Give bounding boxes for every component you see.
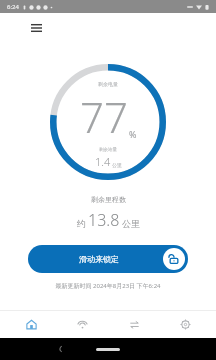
staticText: 约 bbox=[77, 218, 86, 229]
staticText: 13.8 bbox=[88, 209, 120, 231]
staticText: 77 bbox=[80, 88, 128, 145]
button[interactable]: Menu bbox=[26, 17, 46, 37]
button[interactable]: Transfer bbox=[114, 311, 154, 337]
button[interactable]: Wi-Fi bbox=[62, 311, 102, 337]
staticText: 剩余电量 bbox=[98, 81, 118, 87]
staticText: 公里 bbox=[122, 218, 140, 229]
staticText: 6:24 bbox=[7, 3, 19, 11]
button[interactable]: Home bbox=[11, 311, 51, 337]
staticText: 最新更新时间 2024年8月23日 下午6:24 bbox=[55, 282, 161, 290]
staticText: 1.4 bbox=[95, 154, 111, 169]
button[interactable]: Back bbox=[58, 344, 68, 354]
staticText: 剩余里程数 bbox=[91, 195, 126, 204]
staticText: % bbox=[129, 128, 137, 140]
staticText: 公里 bbox=[112, 162, 122, 168]
button[interactable]: 滑动来锁定 bbox=[28, 245, 188, 273]
staticText: 剩余油量 bbox=[99, 147, 117, 153]
staticText: 滑动来锁定 bbox=[79, 254, 119, 264]
button[interactable]: Settings bbox=[165, 311, 205, 337]
